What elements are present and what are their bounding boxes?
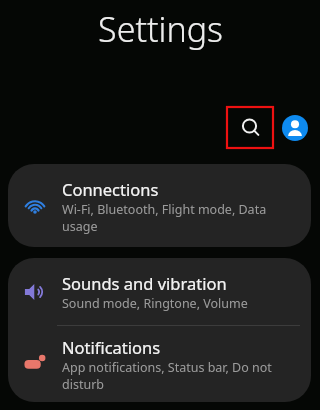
button[interactable]: Connections [8, 164, 311, 247]
staticText: Wi-Fi, Bluetooth, Flight mode, Data usag… [62, 201, 297, 234]
staticText: Settings [98, 6, 223, 52]
staticText: Sound mode, Ringtone, Volume [62, 295, 248, 312]
button[interactable]: Search [227, 107, 273, 148]
staticText: App notifications, Status bar, Do not di… [62, 359, 297, 392]
button[interactable]: Notifications [8, 326, 311, 402]
button[interactable]: Account [282, 115, 308, 141]
staticText: Notifications [62, 336, 161, 358]
staticText: Connections [62, 178, 159, 200]
button[interactable]: Sounds and vibration [8, 258, 311, 325]
staticText: Sounds and vibration [62, 272, 227, 294]
